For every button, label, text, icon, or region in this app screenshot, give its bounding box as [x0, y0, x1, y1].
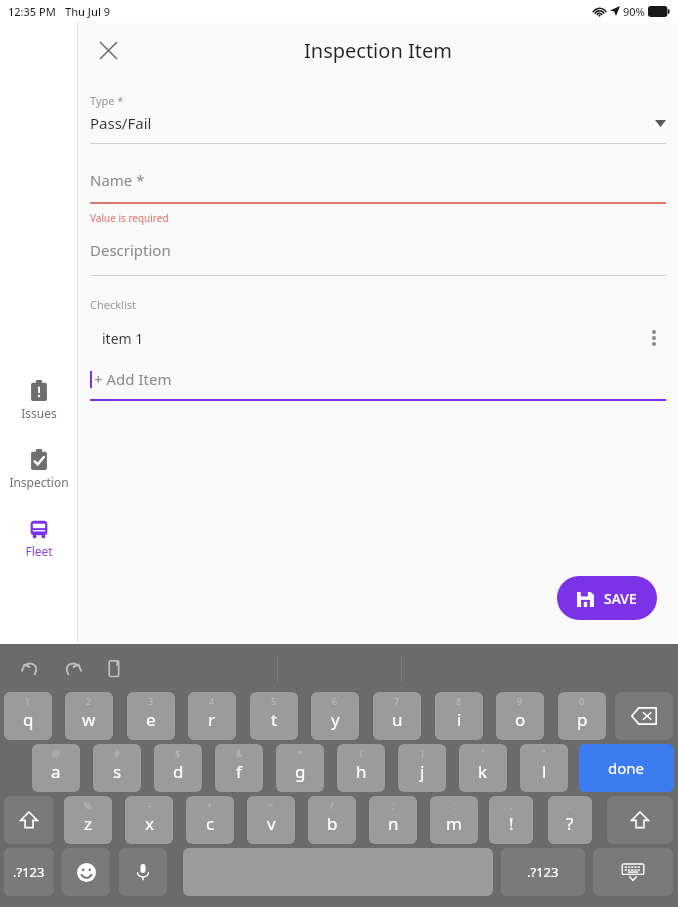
button[interactable]: ;	[369, 796, 417, 844]
button[interactable]: 7	[373, 692, 421, 740]
button[interactable]: Issues	[0, 378, 77, 423]
staticText: *	[298, 747, 303, 759]
staticText: Value is required	[90, 211, 169, 225]
button[interactable]: Shift	[4, 796, 54, 844]
button[interactable]: .?123	[4, 848, 54, 896]
button[interactable]: "	[520, 744, 568, 792]
button[interactable]: 1	[4, 692, 52, 740]
button[interactable]: 0	[558, 692, 606, 740]
button[interactable]: Undo	[16, 654, 44, 682]
button[interactable]: done	[579, 744, 674, 792]
staticText: -	[148, 799, 151, 811]
button[interactable]: 5	[250, 692, 298, 740]
staticText: l	[542, 760, 547, 783]
button[interactable]: ,	[489, 796, 533, 844]
button[interactable]: +	[186, 796, 234, 844]
button[interactable]: SAVE	[557, 576, 657, 620]
button[interactable]: + Add Item	[90, 368, 666, 390]
button[interactable]: -	[125, 796, 173, 844]
staticText: 4	[209, 695, 215, 707]
staticText: u	[392, 708, 403, 731]
button[interactable]: Pass/Fail	[90, 111, 666, 135]
staticText: q	[23, 708, 34, 731]
button[interactable]: Emoji	[62, 848, 110, 896]
button[interactable]: Fleet	[0, 516, 77, 561]
button[interactable]: *	[276, 744, 324, 792]
button[interactable]: 3	[127, 692, 175, 740]
button[interactable]: :	[430, 796, 478, 844]
staticText: 1	[25, 695, 31, 707]
staticText: b	[327, 812, 338, 835]
button[interactable]: Redo	[58, 654, 86, 682]
staticText: z	[84, 812, 92, 835]
staticText: 7	[394, 695, 400, 707]
staticText: 8	[456, 695, 462, 707]
button[interactable]: 9	[496, 692, 544, 740]
staticText: Checklist	[90, 297, 137, 312]
staticText: (	[360, 747, 363, 759]
button[interactable]: Close	[86, 28, 130, 72]
button[interactable]: '	[459, 744, 507, 792]
staticText: f	[236, 760, 242, 783]
button[interactable]: )	[398, 744, 446, 792]
staticText: 9	[517, 695, 523, 707]
staticText: .	[569, 799, 572, 811]
staticText: &	[236, 747, 243, 759]
staticText: k	[478, 760, 488, 783]
staticText: x	[145, 812, 154, 835]
button[interactable]: $	[154, 744, 202, 792]
staticText: Type *	[90, 93, 124, 108]
button[interactable]: item 1	[90, 324, 666, 352]
button[interactable]: Paste	[100, 654, 128, 682]
staticText: .?123	[13, 863, 45, 881]
button[interactable]: Inspection	[0, 447, 77, 492]
staticText: "	[542, 747, 546, 759]
staticText: !	[509, 812, 514, 835]
button[interactable]: 6	[311, 692, 359, 740]
button[interactable]: #	[93, 744, 141, 792]
staticText: o	[515, 708, 526, 731]
button[interactable]: Item options	[642, 326, 666, 350]
staticText: .?123	[527, 863, 559, 881]
staticText: w	[82, 708, 96, 731]
button[interactable]: 4	[188, 692, 236, 740]
staticText: 90%	[623, 4, 645, 19]
button[interactable]: /	[308, 796, 356, 844]
staticText: p	[577, 708, 588, 731]
staticText: j	[420, 760, 425, 783]
staticText: Thu Jul 9	[65, 4, 111, 19]
button[interactable]: @	[32, 744, 80, 792]
staticText: =	[268, 799, 274, 811]
staticText: y	[331, 708, 340, 731]
button[interactable]: Description	[90, 239, 666, 261]
staticText: Inspection Item	[304, 37, 452, 64]
staticText: Inspection	[9, 474, 69, 490]
staticText: r	[208, 708, 216, 731]
staticText: n	[388, 812, 399, 835]
button[interactable]: Hide keyboard	[593, 848, 673, 896]
button[interactable]: 8	[435, 692, 483, 740]
staticText: :	[453, 799, 456, 811]
staticText: h	[356, 760, 367, 783]
button[interactable]: .	[548, 796, 592, 844]
button[interactable]: (	[337, 744, 385, 792]
button[interactable]: &	[215, 744, 263, 792]
button[interactable]: %	[64, 796, 112, 844]
staticText: ,	[510, 799, 513, 811]
button[interactable]: Backspace	[615, 692, 673, 740]
staticText: 2	[86, 695, 92, 707]
button[interactable]: Voice input	[119, 848, 167, 896]
staticText: Issues	[21, 405, 57, 421]
button[interactable]: Shift	[607, 796, 673, 844]
button[interactable]: =	[247, 796, 295, 844]
button[interactable]: .?123	[501, 848, 585, 896]
staticText: ;	[392, 799, 395, 811]
staticText: ?	[566, 812, 574, 835]
staticText: Pass/Fail	[90, 113, 152, 133]
staticText: Name *	[90, 170, 145, 190]
other: Expand type	[655, 120, 666, 127]
staticText: 12:35 PM	[8, 4, 56, 19]
button[interactable]: 2	[65, 692, 113, 740]
button[interactable]: Name *	[90, 169, 666, 191]
